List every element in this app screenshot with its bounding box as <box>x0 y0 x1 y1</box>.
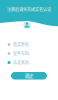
staticText: 认证状态 <box>13 60 29 65</box>
button[interactable]: 证件号码 <box>0 49 58 58</box>
button[interactable]: 认证状态 <box>0 58 58 67</box>
staticText: 注册后请先完成实名认证 <box>7 6 51 12</box>
button[interactable]: 真实姓名 <box>0 40 58 49</box>
staticText: 确定 <box>25 73 33 79</box>
staticText: 证件号码 <box>13 51 29 56</box>
staticText: 真实姓名 <box>13 42 29 47</box>
button[interactable]: 确定 <box>11 72 47 79</box>
